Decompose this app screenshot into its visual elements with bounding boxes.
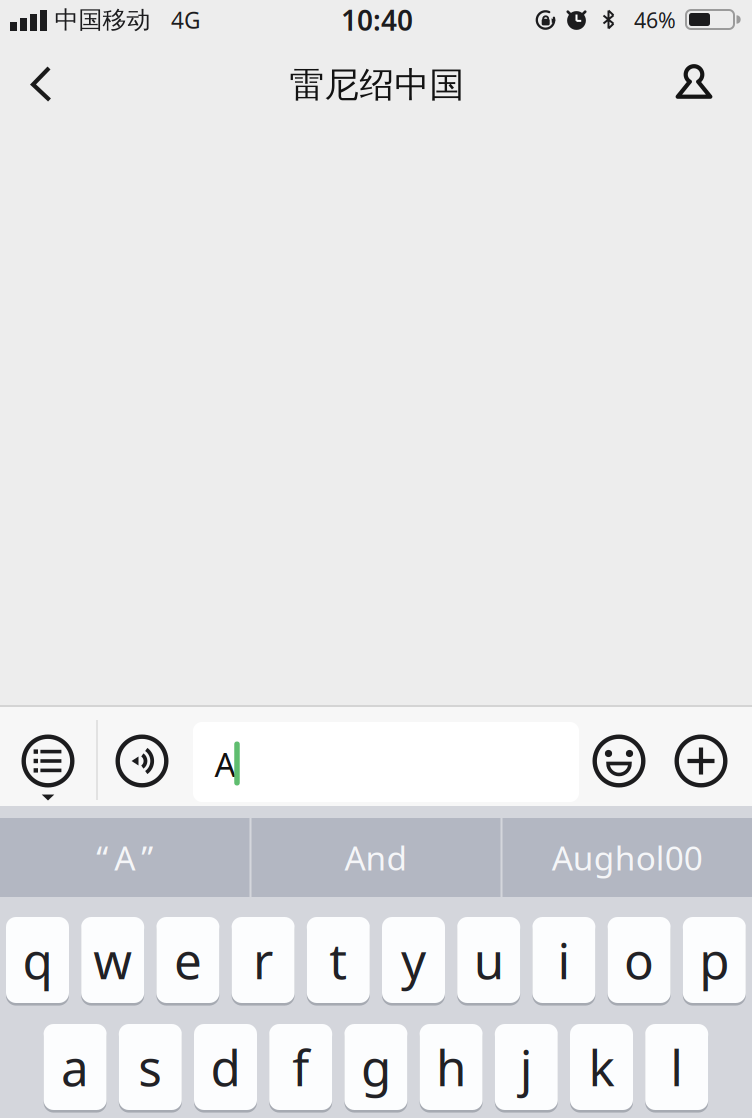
staticText: s (138, 1034, 162, 1100)
staticText: 10:40 (341, 1, 413, 39)
staticText: u (474, 927, 504, 993)
button[interactable]: i (532, 917, 595, 1003)
staticText: A (214, 742, 235, 786)
staticText: j (520, 1034, 533, 1100)
staticText: 中国移动 (54, 5, 150, 35)
button[interactable]: Aughol00 (502, 818, 752, 897)
staticText: h (436, 1034, 466, 1100)
staticText: y (401, 927, 426, 993)
button[interactable]: Message text field (193, 722, 579, 802)
button[interactable]: l (645, 1024, 708, 1110)
staticText: o (624, 927, 654, 993)
button[interactable]: Back (12, 58, 68, 110)
staticText: i (557, 927, 570, 993)
staticText: p (699, 927, 729, 993)
button[interactable]: Shortcut menu (17, 730, 79, 806)
button[interactable]: f (269, 1024, 332, 1110)
button[interactable]: o (608, 917, 671, 1003)
button[interactable]: More (670, 730, 732, 792)
button[interactable]: p (683, 917, 746, 1003)
button[interactable]: s (119, 1024, 182, 1110)
button[interactable]: e (156, 917, 219, 1003)
button[interactable]: a (44, 1024, 107, 1110)
staticText: w (93, 927, 132, 993)
button[interactable]: Voice input (111, 730, 173, 792)
button[interactable]: d (194, 1024, 257, 1110)
button[interactable]: Contact profile (662, 58, 726, 108)
staticText: t (329, 927, 347, 993)
button[interactable]: u (457, 917, 520, 1003)
staticText: f (292, 1034, 309, 1100)
button[interactable]: “ A ” (0, 818, 249, 897)
staticText: r (253, 927, 273, 993)
button[interactable]: y (382, 917, 445, 1003)
staticText: 46% (634, 6, 676, 34)
button[interactable]: And (251, 818, 500, 897)
staticText: k (588, 1034, 614, 1100)
staticText: g (361, 1034, 391, 1100)
button[interactable]: Emoji (588, 730, 650, 792)
staticText: q (22, 927, 52, 993)
button[interactable]: k (570, 1024, 633, 1110)
button[interactable]: q (6, 917, 69, 1003)
staticText: d (210, 1034, 240, 1100)
button[interactable]: g (344, 1024, 407, 1110)
button[interactable]: h (420, 1024, 483, 1110)
staticText: l (670, 1034, 683, 1100)
staticText: “ A ” (96, 835, 153, 880)
button[interactable]: j (495, 1024, 558, 1110)
staticText: a (61, 1034, 89, 1100)
button[interactable]: w (81, 917, 144, 1003)
staticText: e (174, 927, 202, 993)
button[interactable]: t (307, 917, 370, 1003)
staticText: 4G (171, 5, 201, 35)
staticText: Aughol00 (552, 835, 703, 880)
staticText: And (344, 835, 407, 880)
staticText: 雷尼绍中国 (289, 64, 464, 106)
button[interactable]: r (232, 917, 295, 1003)
